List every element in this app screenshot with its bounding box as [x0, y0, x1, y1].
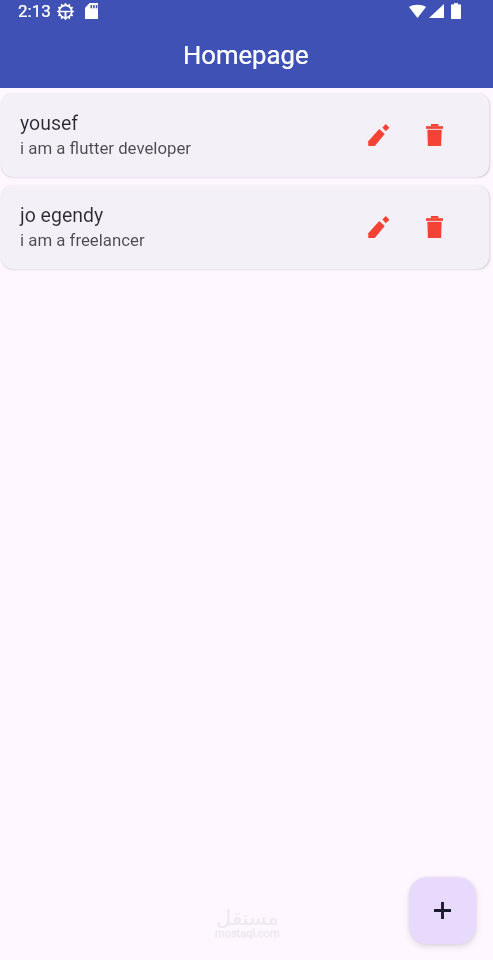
button[interactable]: Edit [357, 113, 401, 157]
button[interactable]: Add [409, 877, 476, 944]
button[interactable]: Delete [412, 205, 456, 249]
staticText: jo egendy [20, 204, 104, 227]
staticText: mostaql.com [215, 927, 280, 940]
staticText: مستقل [216, 906, 279, 930]
button[interactable]: jo egendy [1, 185, 489, 269]
staticText: 2:13 [18, 1, 51, 21]
staticText: i am a freelancer [20, 230, 145, 250]
button[interactable]: yousef [1, 93, 489, 177]
button[interactable]: Delete [412, 113, 456, 157]
staticText: Homepage [183, 40, 309, 70]
button[interactable]: Edit [357, 205, 401, 249]
staticText: yousef [20, 112, 79, 135]
staticText: i am a flutter developer [20, 138, 192, 158]
